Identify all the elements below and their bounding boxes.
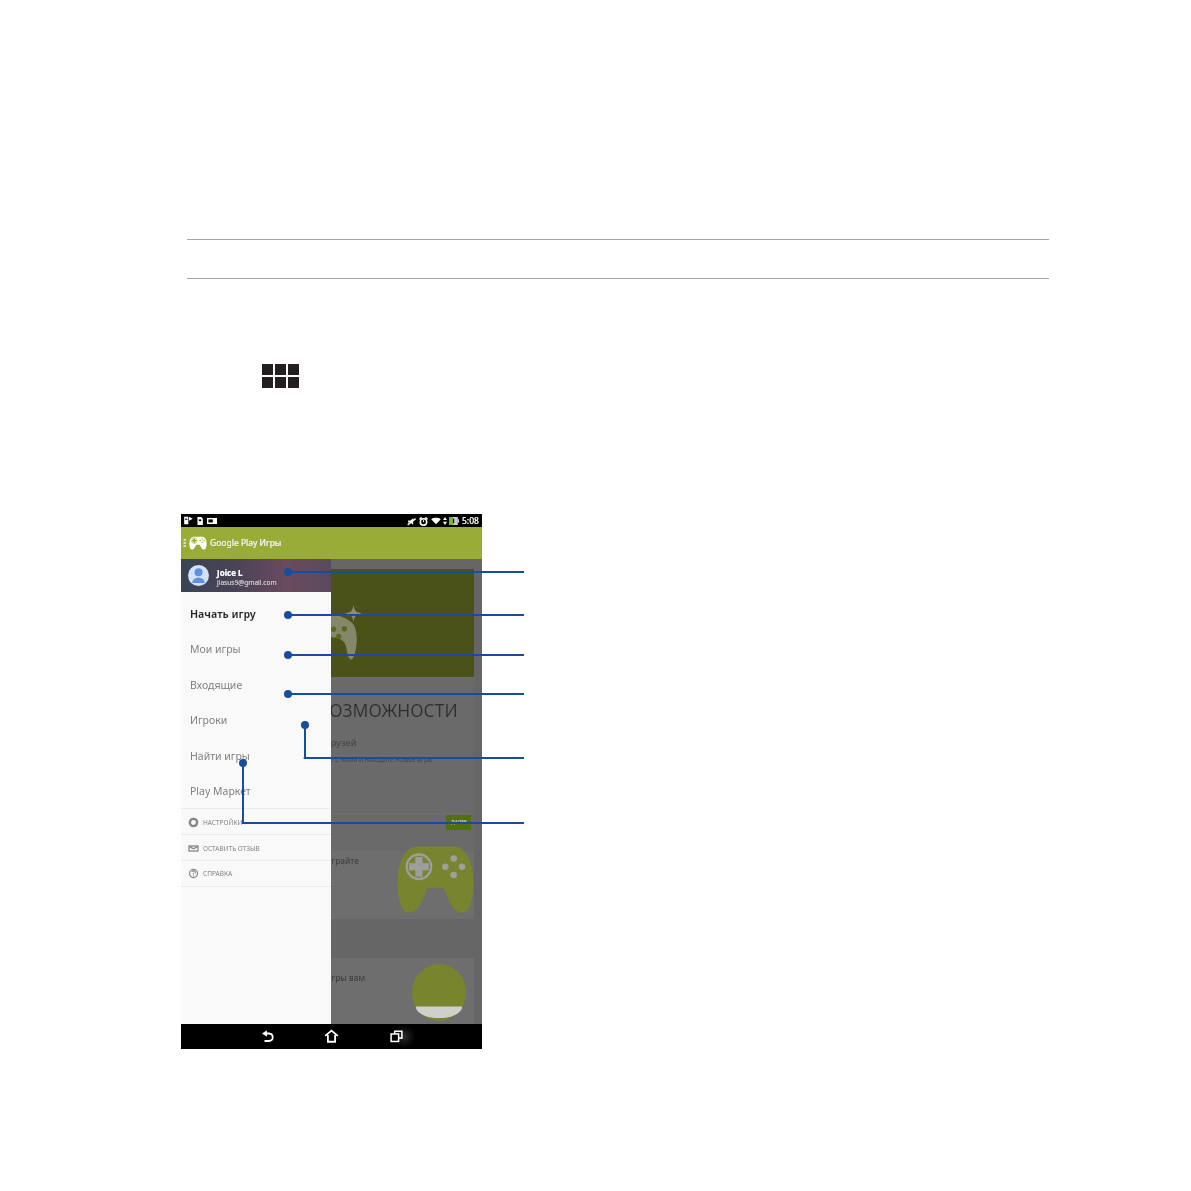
staticText: НАСТРОЙКИ <box>203 818 243 827</box>
button[interactable]: Home <box>307 1024 355 1049</box>
button[interactable]: СПРАВКА <box>181 860 331 886</box>
button[interactable]: Входящие <box>181 667 331 702</box>
staticText: Играйте вместе с ними и находите новые и… <box>284 755 433 764</box>
staticText: Игры вам <box>325 972 366 984</box>
staticText: Игроки <box>190 713 228 727</box>
staticText: ДАЛЕЕ <box>451 819 467 826</box>
button[interactable]: Recents <box>372 1024 420 1049</box>
staticText: Добавляйте друзей <box>267 736 357 749</box>
button[interactable]: Play Маркет <box>181 773 331 808</box>
staticText: СПРАВКА <box>203 869 233 878</box>
button[interactable]: Начать игру <box>181 596 331 631</box>
staticText: Играйте <box>325 855 359 867</box>
staticText: jlasus9@gmail.com <box>217 578 277 587</box>
button[interactable]: Найти игры <box>181 738 331 773</box>
button[interactable]: НАСТРОЙКИ <box>181 809 331 835</box>
button[interactable]: ОСТАВИТЬ ОТЗЫВ <box>181 835 331 861</box>
staticText: Joice L <box>217 567 243 578</box>
button[interactable]: ДАЛЕЕ <box>446 815 471 830</box>
staticText: Входящие <box>190 678 243 692</box>
staticText: Найти игры <box>190 749 250 763</box>
staticText: Начать игру <box>190 607 256 621</box>
button[interactable]: Back <box>243 1024 291 1049</box>
staticText: Google Play Игры <box>210 537 282 549</box>
staticText: ОСТАВИТЬ ОТЗЫВ <box>203 844 260 853</box>
staticText: ВОЗМОЖНОСТИ <box>318 698 458 722</box>
button[interactable]: Мои игры <box>181 631 331 666</box>
staticText: Play Маркет <box>190 784 251 798</box>
staticText: Мои игры <box>190 642 241 656</box>
button[interactable]: Игроки <box>181 702 331 737</box>
button[interactable]: Open navigation menu <box>183 536 188 550</box>
staticText: 5:08 <box>462 515 479 527</box>
